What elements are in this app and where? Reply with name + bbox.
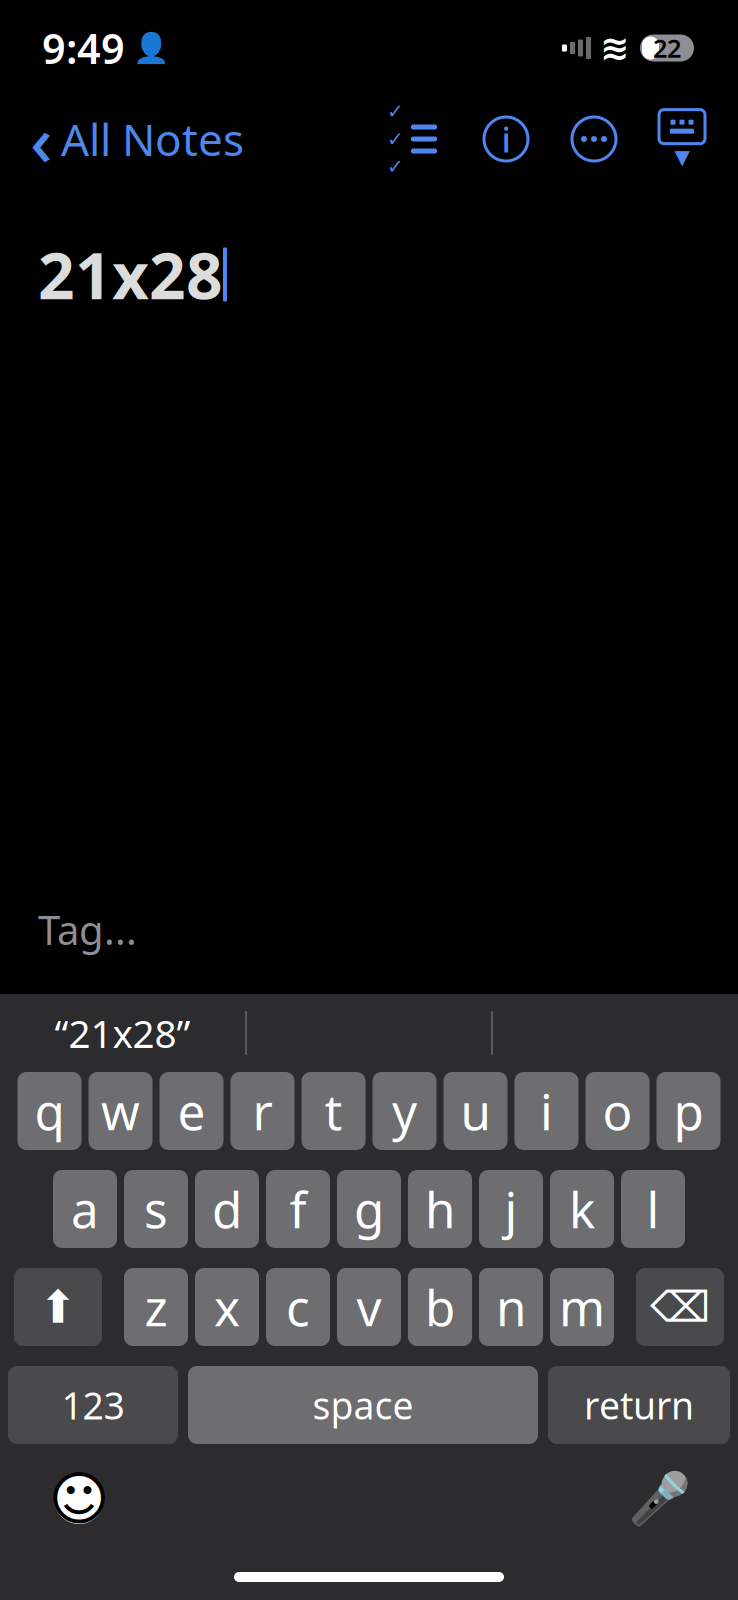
staticText: v <box>356 1274 381 1340</box>
staticText: i <box>501 116 510 162</box>
button[interactable]: ‹ <box>26 93 248 185</box>
button[interactable]: r <box>230 1072 294 1150</box>
button[interactable]: k <box>550 1170 614 1248</box>
button[interactable]: t <box>301 1072 365 1150</box>
staticText: f <box>289 1176 306 1242</box>
button[interactable]: c <box>266 1268 330 1346</box>
staticText: b <box>425 1274 455 1340</box>
staticText: ✓ <box>387 155 404 178</box>
staticText: return <box>584 1380 694 1430</box>
staticText: ≋ <box>600 28 629 68</box>
button[interactable]: Info <box>476 109 536 169</box>
staticText: j <box>504 1176 517 1242</box>
staticText: ⬆ <box>39 1281 77 1333</box>
button[interactable]: l <box>621 1170 685 1248</box>
staticText: w <box>101 1078 140 1144</box>
staticText: p <box>673 1078 703 1144</box>
button[interactable]: “21x28” <box>0 996 245 1070</box>
button[interactable]: 123 <box>8 1366 178 1444</box>
staticText: y <box>392 1078 417 1144</box>
staticText: 22 <box>653 31 681 65</box>
staticText: space <box>312 1380 413 1430</box>
button[interactable]: i <box>514 1072 578 1150</box>
staticText: ✓ <box>387 128 404 150</box>
staticText: g <box>354 1176 384 1242</box>
staticText: Tag... <box>38 903 137 956</box>
button[interactable]: q <box>17 1072 81 1150</box>
button[interactable]: f <box>266 1170 330 1248</box>
staticText: 21x28 <box>38 232 223 317</box>
button[interactable]: Emoji <box>34 1454 124 1544</box>
button[interactable]: Dictate <box>614 1454 704 1544</box>
button[interactable]: Checklist <box>376 109 448 169</box>
button[interactable]: o <box>585 1072 649 1150</box>
staticText: i <box>540 1078 553 1144</box>
staticText: t <box>324 1078 342 1144</box>
button[interactable]: n <box>479 1268 543 1346</box>
staticText: d <box>212 1176 242 1242</box>
staticText: “21x28” <box>54 1007 190 1059</box>
button[interactable]: More <box>564 109 624 169</box>
staticText: e <box>177 1078 205 1144</box>
button[interactable]: a <box>53 1170 117 1248</box>
staticText: k <box>569 1176 595 1242</box>
staticText: c <box>286 1274 310 1340</box>
button[interactable]: j <box>479 1170 543 1248</box>
staticText: All Notes <box>61 110 244 168</box>
button[interactable]: g <box>337 1170 401 1248</box>
button[interactable]: Shift <box>14 1268 102 1346</box>
button[interactable]: x <box>195 1268 259 1346</box>
button[interactable]: e <box>159 1072 223 1150</box>
staticText: n <box>496 1274 526 1340</box>
staticText: s <box>144 1176 168 1242</box>
button[interactable]: return <box>548 1366 730 1444</box>
staticText: a <box>71 1176 99 1242</box>
staticText: 9:49 <box>42 21 125 75</box>
staticText: m <box>559 1274 605 1340</box>
staticText: 🎤 <box>627 1470 690 1528</box>
staticText: o <box>602 1078 632 1144</box>
button[interactable]: b <box>408 1268 472 1346</box>
button[interactable]: s <box>124 1170 188 1248</box>
button[interactable]: u <box>443 1072 507 1150</box>
staticText: r <box>252 1078 272 1144</box>
button[interactable]: w <box>88 1072 152 1150</box>
staticText: ✓ <box>387 100 404 123</box>
staticText: z <box>144 1274 167 1340</box>
button[interactable]: h <box>408 1170 472 1248</box>
staticText: ☺ <box>48 1466 109 1532</box>
button[interactable]: Delete <box>636 1268 724 1346</box>
staticText: u <box>460 1078 490 1144</box>
staticText: 123 <box>61 1380 124 1430</box>
staticText: ▼ <box>674 146 689 168</box>
button[interactable]: d <box>195 1170 259 1248</box>
staticText: ‹ <box>30 93 53 185</box>
button[interactable]: m <box>550 1268 614 1346</box>
staticText: ⌫ <box>650 1283 710 1331</box>
staticText: x <box>214 1274 240 1340</box>
staticText: q <box>34 1078 64 1144</box>
button[interactable]: y <box>372 1072 436 1150</box>
staticText: l <box>646 1176 659 1242</box>
staticText: 👤 <box>133 31 170 65</box>
staticText: h <box>425 1176 455 1242</box>
button[interactable]: v <box>337 1268 401 1346</box>
button[interactable]: p <box>656 1072 720 1150</box>
button[interactable]: Hide Keyboard <box>652 109 712 169</box>
button[interactable]: Tag... <box>38 893 137 966</box>
button[interactable]: z <box>124 1268 188 1346</box>
button[interactable]: space <box>188 1366 538 1444</box>
